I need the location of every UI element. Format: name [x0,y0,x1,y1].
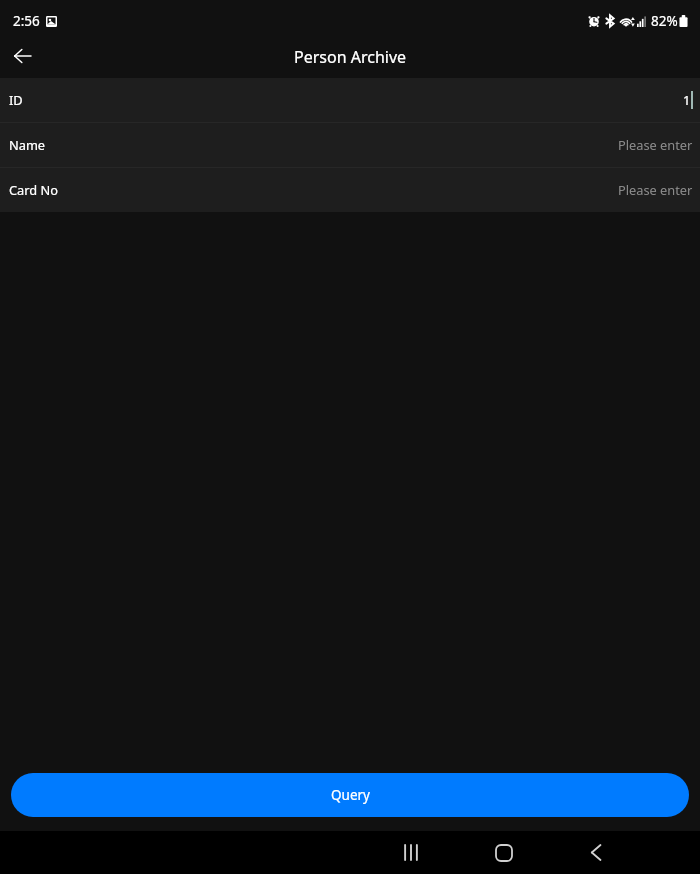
staticText: 1 [683,91,691,108]
staticText: ID [9,91,23,108]
button[interactable]: Back [574,831,618,874]
staticText: 82% [651,12,678,30]
button[interactable]: ID [0,78,700,122]
staticText: Card No [9,181,58,198]
staticText: Name [9,136,46,153]
staticText: Person Archive [294,46,407,68]
staticText: 2:56 [13,12,40,30]
staticText: Query [331,786,370,804]
button[interactable]: Card No [0,168,700,212]
staticText: Please enter [618,181,693,198]
button[interactable]: Back [0,37,44,78]
button[interactable]: Query [11,773,689,817]
button[interactable]: Home [482,831,526,874]
button[interactable]: Name [0,123,700,167]
button[interactable]: Recent apps [389,831,433,874]
staticText: Please enter [618,136,693,153]
